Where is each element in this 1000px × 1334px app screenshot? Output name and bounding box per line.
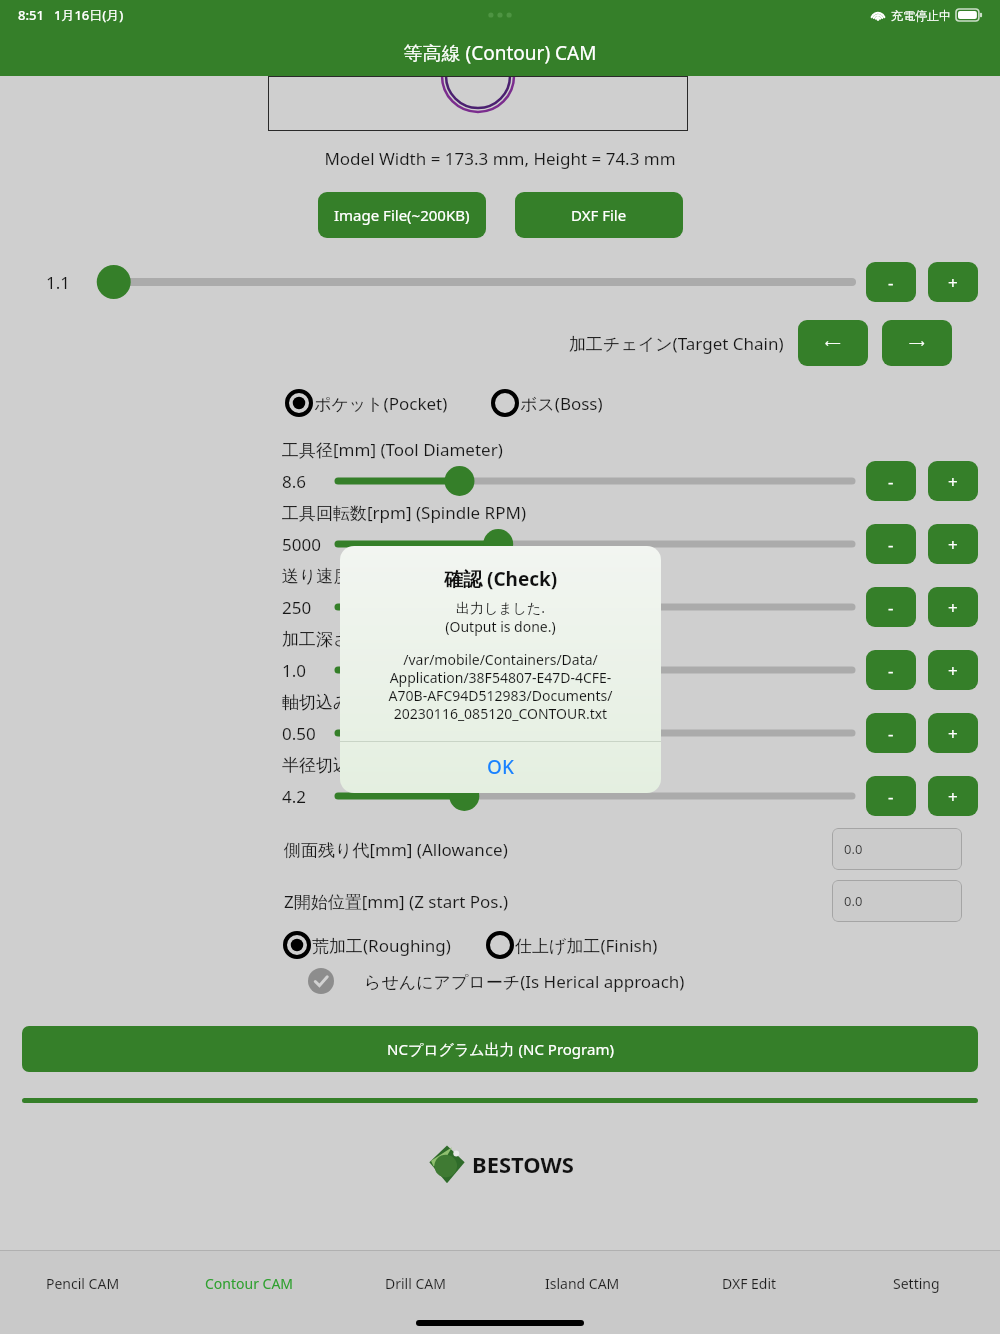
staticText: 0.0 — [844, 840, 863, 858]
staticText: + — [948, 659, 958, 682]
button[interactable] — [338, 650, 852, 690]
staticText: Contour CAM — [205, 1274, 294, 1293]
button[interactable]: Pencil CAM — [0, 1274, 166, 1314]
button[interactable]: + — [928, 650, 978, 690]
staticText: + — [948, 785, 958, 808]
button[interactable]: 0.0 — [832, 828, 962, 870]
staticText: 8.6 — [282, 470, 338, 493]
staticText: 4.2 — [282, 785, 338, 808]
staticText: ⟶ — [909, 337, 925, 350]
staticText: 1.0 — [282, 659, 338, 682]
staticText: + — [948, 533, 958, 556]
staticText: 5000 — [282, 533, 338, 556]
staticText: OK — [487, 754, 514, 780]
button[interactable]: - — [866, 461, 916, 501]
button[interactable] — [338, 524, 852, 564]
staticText: ポケット(Pocket) — [314, 392, 448, 415]
staticText: - — [888, 470, 894, 493]
button[interactable]: + — [928, 461, 978, 501]
staticText: 0.50 — [282, 722, 338, 745]
button[interactable]: 仕上げ加工(Finish) — [485, 930, 658, 960]
staticText: - — [888, 785, 894, 808]
button[interactable]: Contour CAM — [166, 1274, 332, 1314]
staticText: Drill CAM — [385, 1274, 446, 1293]
button[interactable]: - — [866, 587, 916, 627]
button[interactable]: Helical approach — [304, 964, 338, 998]
button[interactable] — [338, 713, 852, 753]
button[interactable]: DXF File — [515, 192, 683, 238]
button[interactable]: + — [928, 262, 978, 302]
staticText: - — [888, 533, 894, 556]
button[interactable]: DXF Edit — [666, 1274, 833, 1314]
button[interactable]: - — [866, 650, 916, 690]
button[interactable]: - — [866, 776, 916, 816]
staticText: Model Width = 173.3 mm, Height = 74.3 mm — [22, 147, 978, 170]
staticText: 仕上げ加工(Finish) — [515, 934, 658, 957]
staticText: 軸切込み量[mm] (Axial depth) — [282, 690, 515, 713]
staticText: Image File(~200KB) — [334, 205, 470, 225]
button[interactable]: + — [928, 587, 978, 627]
button[interactable]: Previous chain — [798, 320, 868, 366]
button[interactable]: Island CAM — [499, 1274, 666, 1314]
staticText: 1.1 — [46, 271, 82, 294]
button[interactable] — [338, 461, 852, 501]
staticText: - — [888, 271, 894, 294]
button[interactable]: + — [928, 713, 978, 753]
staticText: DXF Edit — [722, 1274, 777, 1293]
staticText: ボス(Boss) — [520, 392, 603, 415]
button[interactable] — [82, 262, 852, 302]
button[interactable]: OK — [340, 741, 661, 793]
button[interactable]: ボス(Boss) — [490, 388, 603, 418]
button[interactable]: - — [866, 524, 916, 564]
staticText: 送り速度[mm/min] (Feed rate) — [282, 564, 520, 587]
staticText: 確認 (Check) — [444, 566, 558, 592]
staticText: 0.0 — [844, 892, 863, 910]
button[interactable]: Image File(~200KB) — [318, 192, 486, 238]
button[interactable]: - — [866, 713, 916, 753]
staticText: 出力しました. (Output is done.) — [340, 598, 661, 636]
staticText: 1月16日(月) — [54, 6, 124, 24]
staticText: 加工深さ[mm] (Cut depth) — [282, 627, 487, 650]
button[interactable] — [338, 587, 852, 627]
button[interactable]: Setting — [833, 1274, 1000, 1314]
staticText: ⟵ — [825, 337, 841, 350]
button[interactable]: 荒加工(Roughing) — [282, 930, 451, 960]
staticText: + — [948, 722, 958, 745]
staticText: BESTOWS — [472, 1149, 574, 1179]
button[interactable]: 0.0 — [832, 880, 962, 922]
staticText: 荒加工(Roughing) — [312, 934, 451, 957]
staticText: - — [888, 722, 894, 745]
button[interactable]: - — [866, 262, 916, 302]
staticText: + — [948, 596, 958, 619]
staticText: Setting — [893, 1274, 940, 1293]
staticText: 半径切込み量[mm] (Radial depth) — [282, 753, 543, 776]
staticText: 等高線 (Contour) CAM — [0, 40, 1000, 66]
staticText: Pencil CAM — [46, 1274, 120, 1293]
staticText: DXF File — [571, 205, 627, 225]
staticText: - — [888, 596, 894, 619]
button[interactable]: + — [928, 776, 978, 816]
button[interactable]: ポケット(Pocket) — [284, 388, 448, 418]
staticText: 充電停止中 — [891, 8, 951, 23]
staticText: 側面残り代[mm] (Allowance) — [284, 838, 508, 861]
staticText: 250 — [282, 596, 338, 619]
staticText: 工具径[mm] (Tool Diameter) — [282, 438, 503, 461]
staticText: + — [948, 470, 958, 493]
staticText: Z開始位置[mm] (Z start Pos.) — [284, 890, 509, 913]
button[interactable] — [338, 776, 852, 816]
staticText: + — [948, 271, 958, 294]
staticText: NCプログラム出力 (NC Program) — [387, 1039, 614, 1059]
staticText: Island CAM — [545, 1274, 620, 1293]
staticText: - — [888, 659, 894, 682]
button[interactable]: + — [928, 524, 978, 564]
staticText: /var/mobile/Containers/Data/ Application… — [340, 650, 661, 723]
staticText: らせんにアプローチ(Is Herical approach) — [364, 970, 685, 993]
staticText: 工具回転数[rpm] (Spindle RPM) — [282, 501, 526, 524]
staticText: 8:51 — [18, 6, 44, 24]
staticText: 加工チェイン(Target Chain) — [569, 332, 784, 355]
button[interactable]: Drill CAM — [332, 1274, 499, 1314]
button[interactable]: Next chain — [882, 320, 952, 366]
button[interactable]: NCプログラム出力 (NC Program) — [22, 1026, 978, 1072]
